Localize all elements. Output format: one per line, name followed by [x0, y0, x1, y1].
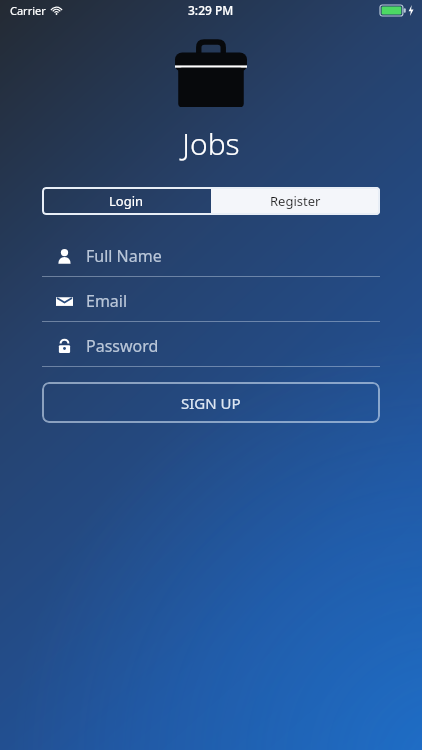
- button[interactable]: Login: [42, 187, 211, 215]
- staticText: Carrier: [10, 3, 46, 18]
- button[interactable]: Email: [42, 281, 380, 326]
- staticText: Password: [86, 335, 159, 357]
- button[interactable]: Password: [42, 326, 380, 371]
- staticText: SIGN UP: [181, 393, 241, 413]
- staticText: Register: [270, 192, 321, 210]
- staticText: Jobs: [0, 123, 422, 164]
- button[interactable]: Register: [211, 187, 380, 215]
- button[interactable]: Full Name: [42, 236, 380, 281]
- staticText: Email: [86, 290, 128, 312]
- staticText: Login: [109, 192, 144, 210]
- staticText: Full Name: [86, 245, 162, 267]
- button[interactable]: Sign up: [42, 382, 380, 423]
- staticText: 3:29 PM: [188, 2, 234, 18]
